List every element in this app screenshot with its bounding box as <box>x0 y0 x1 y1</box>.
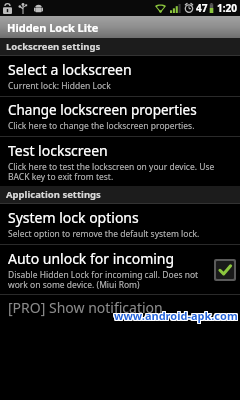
staticText: Select a lockscreen <box>8 60 132 79</box>
staticText: System lock options <box>8 208 139 227</box>
staticText: www.android-apk.com <box>114 309 238 324</box>
staticText: [PRO] Show notification <box>8 298 163 317</box>
staticText: www.android-apk.com <box>115 307 239 322</box>
button[interactable]: Auto unlock for incoming call, enabled <box>216 261 234 279</box>
staticText: www.android-apk.com <box>114 308 238 323</box>
staticText: Disable Hidden Lock for incoming call. D… <box>8 269 210 290</box>
button[interactable]: Change lockscreen properties <box>0 97 240 136</box>
staticText: Current lock: Hidden Lock <box>8 80 111 92</box>
staticText: www.android-apk.com <box>113 309 237 324</box>
staticText: www.android-apk.com <box>114 307 238 322</box>
staticText: Test lockscreen <box>8 141 108 160</box>
staticText: 1:20 <box>217 1 237 15</box>
staticText: Select option to remove the default syst… <box>8 228 200 240</box>
staticText: Lockscreen settings <box>6 40 101 53</box>
staticText: Click here to test the lockscreen on you… <box>8 161 236 182</box>
button[interactable]: Test lockscreen <box>0 137 240 186</box>
button[interactable]: System lock options <box>0 204 240 244</box>
staticText: www.android-apk.com <box>113 308 237 323</box>
button[interactable]: Select a lockscreen <box>0 56 240 96</box>
staticText: www.android-apk.com <box>115 308 239 323</box>
staticText: www.android-apk.com <box>113 307 237 322</box>
staticText: Change lockscreen properties <box>8 101 197 119</box>
staticText: 47 <box>196 1 208 15</box>
staticText: Auto unlock for incoming <box>8 249 175 268</box>
staticText: Application settings <box>6 188 101 201</box>
staticText: www.android-apk.com <box>115 309 239 324</box>
button[interactable]: [PRO] Show notification <box>0 295 240 325</box>
button[interactable]: Auto unlock for incoming <box>0 245 240 294</box>
staticText: Click here to change the lockscreen prop… <box>8 120 195 132</box>
staticText: Hidden Lock Lite <box>7 20 99 35</box>
